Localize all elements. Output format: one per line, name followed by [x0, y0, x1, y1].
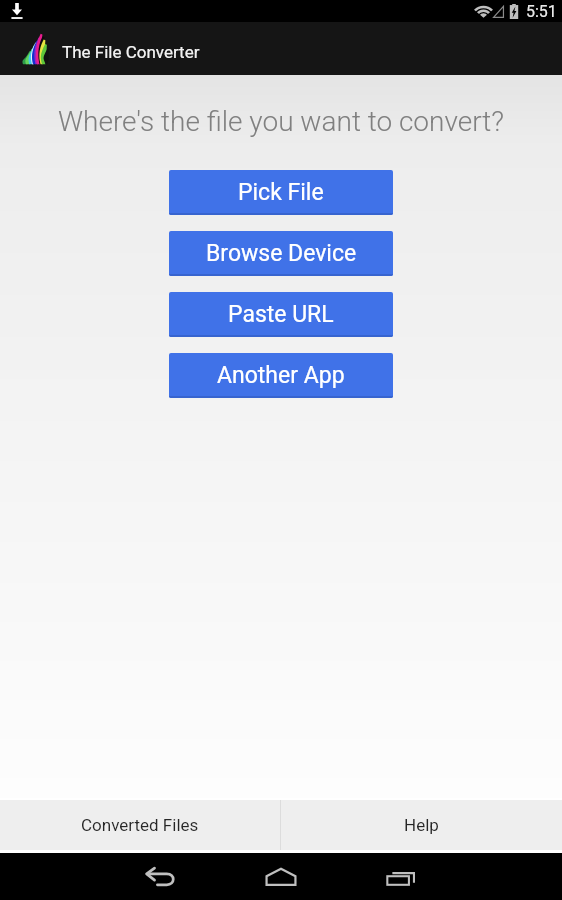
- button[interactable]: Another App: [169, 353, 393, 398]
- button[interactable]: Converted Files: [0, 800, 280, 850]
- button[interactable]: Help: [281, 800, 562, 850]
- button[interactable]: Browse Device: [169, 231, 393, 276]
- button[interactable]: Home: [221, 853, 341, 900]
- staticText: Help: [404, 815, 439, 835]
- staticText: Another App: [217, 362, 345, 389]
- staticText: Converted Files: [81, 815, 199, 835]
- staticText: Paste URL: [228, 301, 334, 328]
- button[interactable]: Back: [101, 853, 221, 900]
- button[interactable]: Paste URL: [169, 292, 393, 337]
- button[interactable]: Recent apps: [341, 853, 461, 900]
- staticText: Pick File: [238, 179, 324, 206]
- staticText: 5:51: [526, 2, 557, 21]
- staticText: The File Converter: [62, 42, 200, 62]
- staticText: Where's the file you want to convert?: [0, 105, 562, 138]
- staticText: Browse Device: [206, 240, 357, 267]
- button[interactable]: Pick File: [169, 170, 393, 215]
